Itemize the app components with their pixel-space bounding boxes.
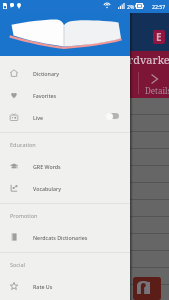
button[interactable]: Aardvarke	[0, 51, 169, 98]
button[interactable]: Rate Us	[0, 275, 130, 297]
button[interactable]: Dictionary	[0, 62, 130, 84]
staticText: Nerdcats Dictionaries	[33, 234, 88, 241]
button[interactable]	[0, 98, 169, 115]
staticText: Social	[10, 261, 25, 268]
button[interactable]	[0, 234, 169, 251]
button[interactable]	[0, 200, 169, 217]
staticText: Favorites	[33, 92, 57, 99]
button[interactable]	[0, 268, 169, 285]
staticText: E	[156, 30, 162, 44]
button[interactable]: Nerdcats app	[133, 277, 161, 300]
button[interactable]	[0, 251, 169, 268]
staticText: Education	[10, 141, 36, 148]
staticText: Dictionary	[33, 70, 59, 77]
button[interactable]: Nerdcats Dictionaries	[0, 226, 130, 248]
button[interactable]	[0, 166, 169, 183]
staticText: Promotion	[10, 212, 38, 219]
button[interactable]	[0, 132, 169, 149]
staticText: Aardvarke	[114, 52, 169, 67]
staticText: 22:57	[152, 3, 166, 10]
button[interactable]: Level E	[153, 30, 165, 44]
staticText: GRE Words	[33, 163, 61, 170]
staticText: 2%	[127, 3, 135, 10]
button[interactable]: Vocabulary	[0, 177, 130, 199]
staticText: Live	[33, 114, 44, 121]
button[interactable]	[0, 217, 169, 234]
button[interactable]	[0, 149, 169, 166]
staticText: Vocabulary	[33, 185, 62, 192]
button[interactable]	[0, 115, 169, 132]
button[interactable]: Favorites	[0, 84, 130, 106]
button[interactable]: Live	[0, 106, 130, 128]
staticText: Rate Us	[33, 283, 53, 290]
button[interactable]	[0, 183, 169, 200]
staticText: Details	[145, 85, 169, 96]
button[interactable]: GRE Words	[0, 155, 130, 177]
